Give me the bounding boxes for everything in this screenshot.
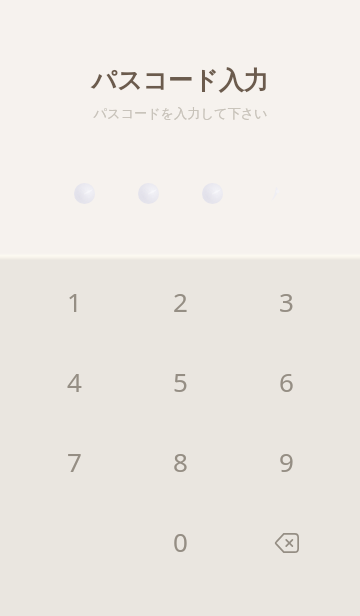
staticText: 2 [173, 284, 188, 319]
staticText: パスコードを入力して下さい [93, 105, 268, 122]
button[interactable]: 6 [233, 341, 339, 421]
staticText: 3 [279, 284, 294, 319]
button[interactable]: 7 [21, 421, 127, 501]
staticText: パスコード入力 [91, 65, 269, 96]
staticText: 8 [173, 444, 188, 479]
staticText: 5 [173, 364, 188, 399]
button[interactable]: 3 [233, 261, 339, 341]
other: Backspace [274, 533, 299, 553]
button[interactable]: Backspace [233, 501, 339, 581]
staticText: 0 [173, 524, 188, 559]
button[interactable]: 1 [21, 261, 127, 341]
button[interactable]: 8 [127, 421, 233, 501]
staticText: 9 [279, 444, 294, 479]
button[interactable]: 0 [127, 501, 233, 581]
button[interactable]: 5 [127, 341, 233, 421]
staticText: 6 [279, 364, 294, 399]
button[interactable]: 2 [127, 261, 233, 341]
staticText: 7 [67, 444, 82, 479]
staticText: 1 [67, 284, 82, 319]
button[interactable]: 9 [233, 421, 339, 501]
staticText: 4 [67, 364, 82, 399]
button[interactable]: 4 [21, 341, 127, 421]
